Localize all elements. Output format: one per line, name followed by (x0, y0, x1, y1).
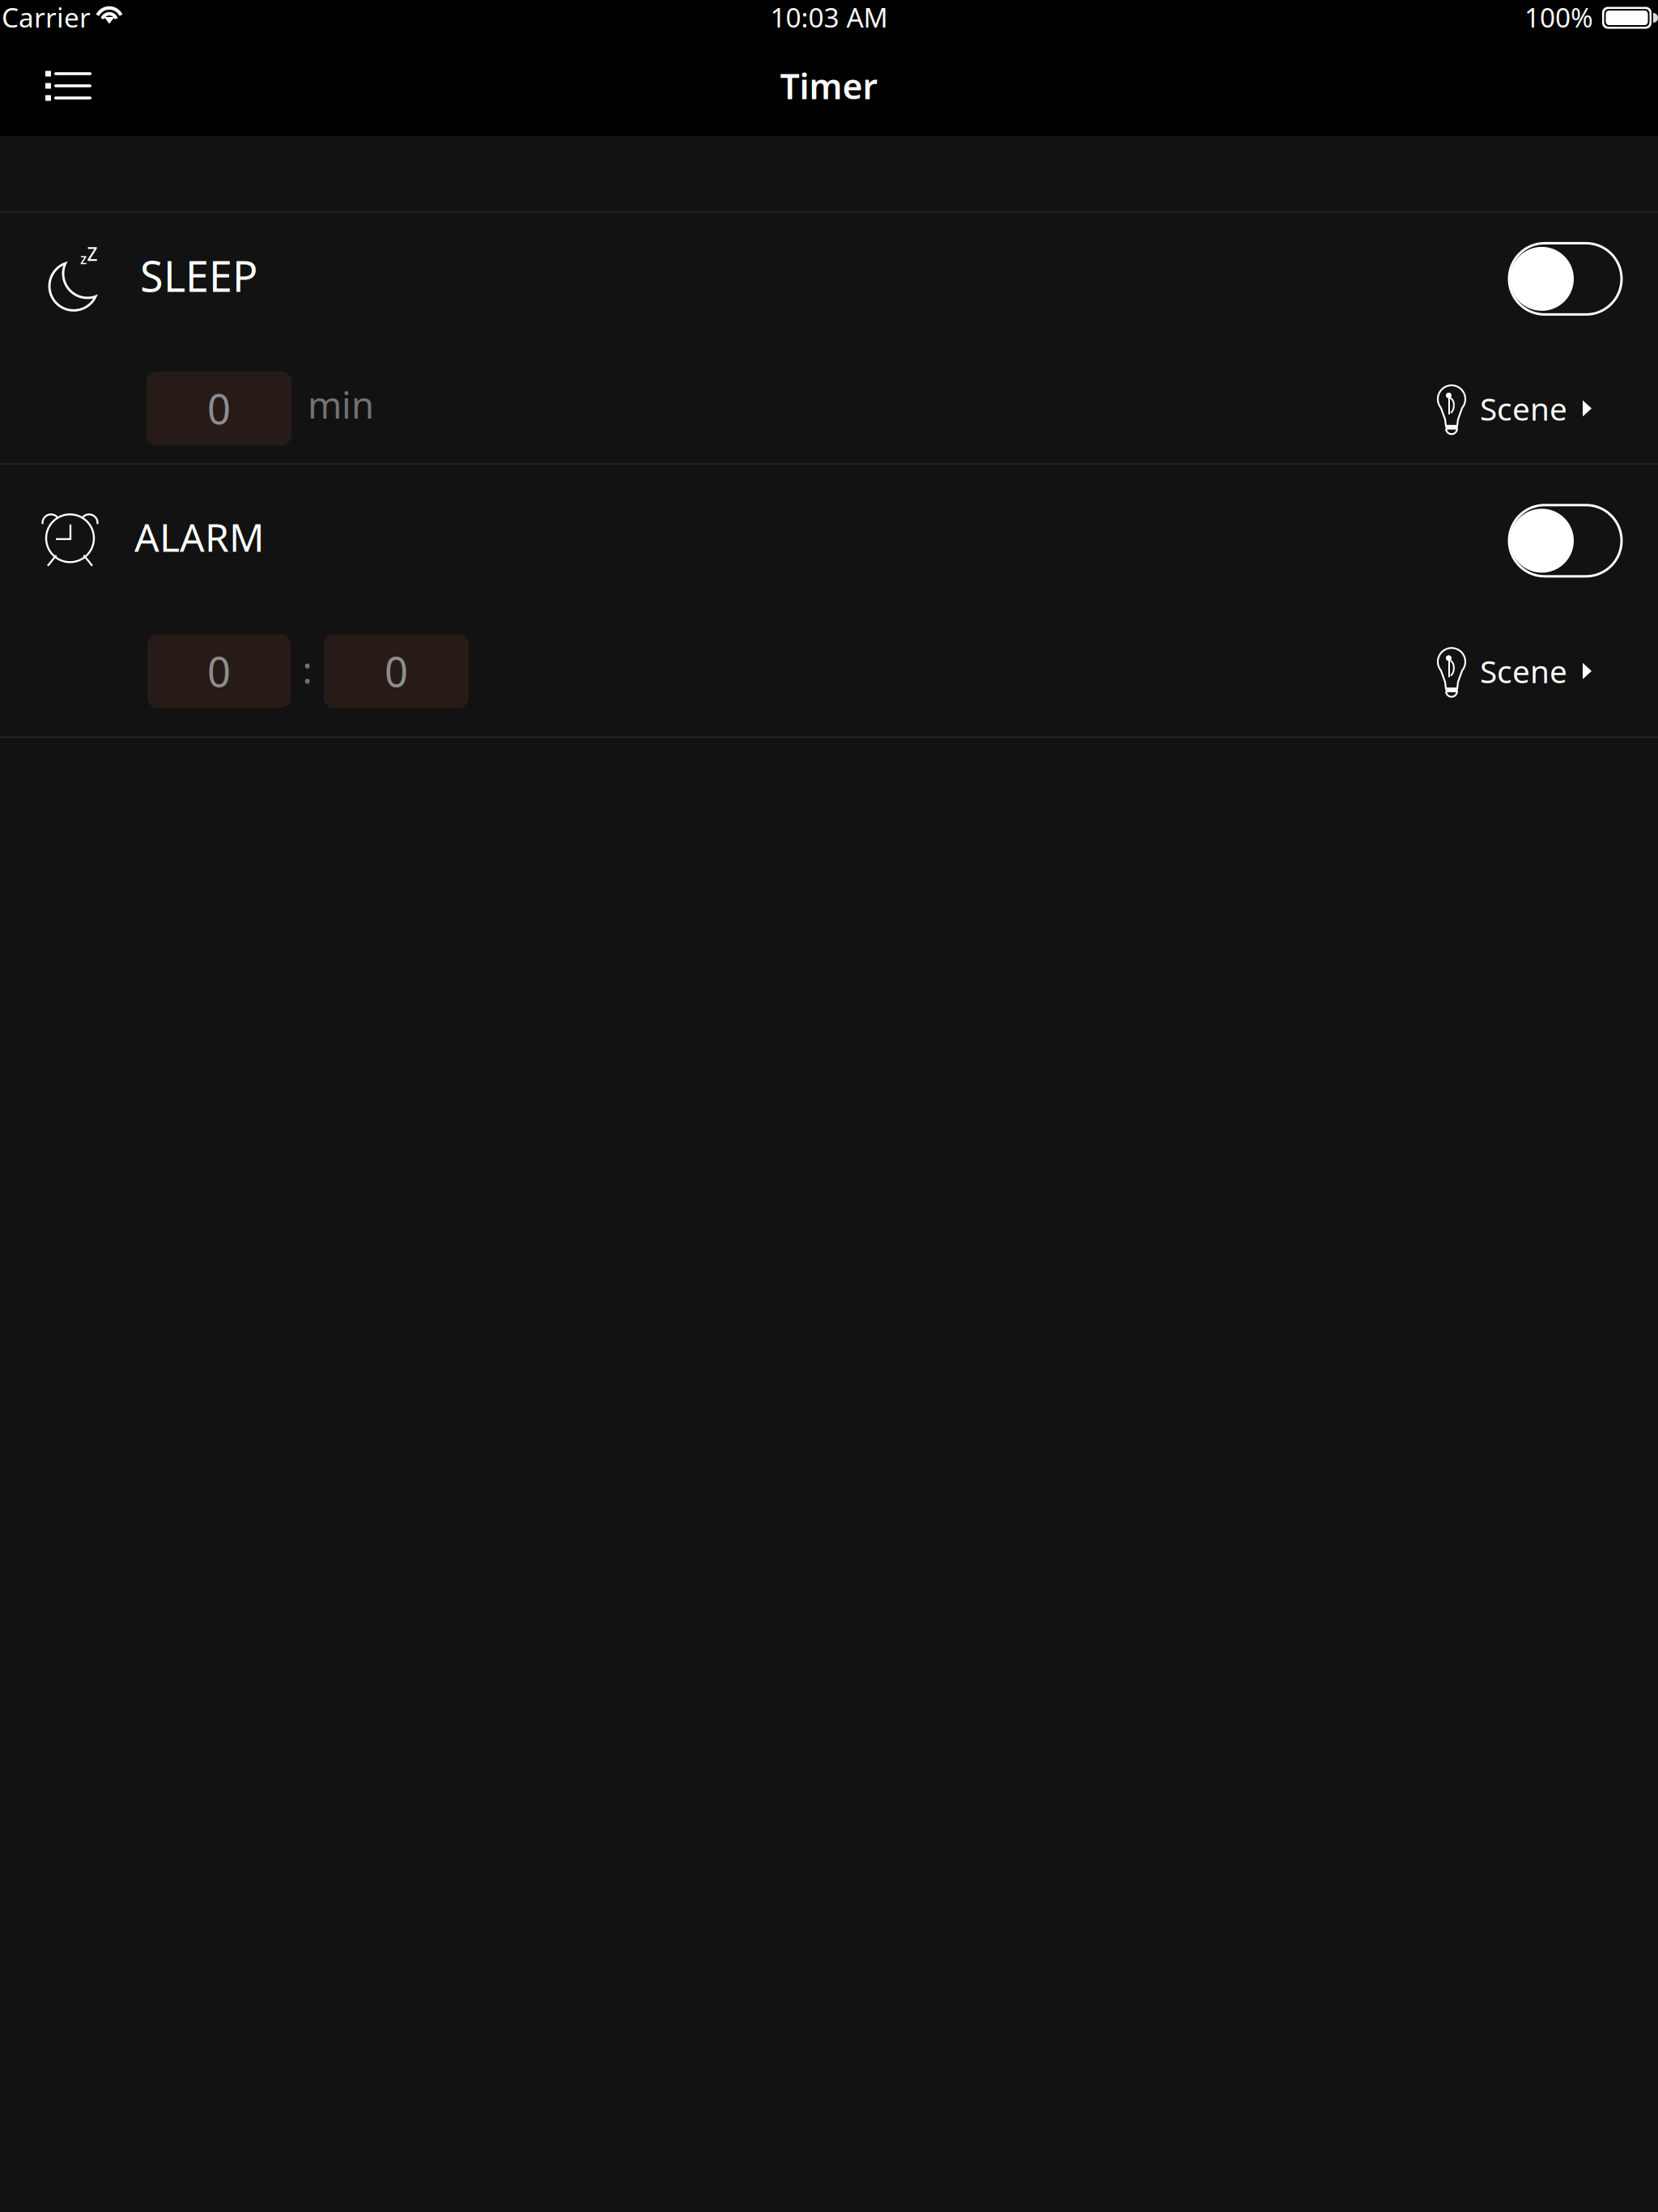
staticText: 0 (207, 644, 231, 698)
staticText: 0 (207, 381, 231, 436)
staticText: SLEEP (140, 248, 257, 304)
staticText: 10:03 AM (770, 0, 888, 35)
staticText: : (302, 645, 312, 694)
staticText: z (80, 249, 87, 268)
button[interactable]: Sleep minutes (147, 372, 291, 445)
staticText: Timer (780, 63, 878, 109)
button[interactable]: Alarm minute (324, 634, 469, 708)
staticText: ALARM (134, 511, 265, 562)
staticText: Scene (1480, 388, 1567, 429)
button[interactable]: z (0, 212, 1658, 350)
staticText: Scene (1480, 650, 1567, 692)
button[interactable]: ALARM (0, 465, 1658, 617)
button[interactable]: Off (1509, 505, 1622, 576)
staticText: min (308, 380, 374, 429)
button[interactable]: Menu (0, 51, 117, 121)
staticText: 100% (1524, 0, 1593, 35)
staticText: Z (87, 242, 98, 266)
staticText: Carrier (2, 0, 91, 35)
button[interactable]: Off (1509, 243, 1622, 314)
button[interactable]: Scene (1432, 373, 1592, 444)
button[interactable]: Scene (1432, 636, 1592, 706)
button[interactable]: Alarm hour (147, 634, 291, 708)
staticText: 0 (385, 644, 408, 698)
